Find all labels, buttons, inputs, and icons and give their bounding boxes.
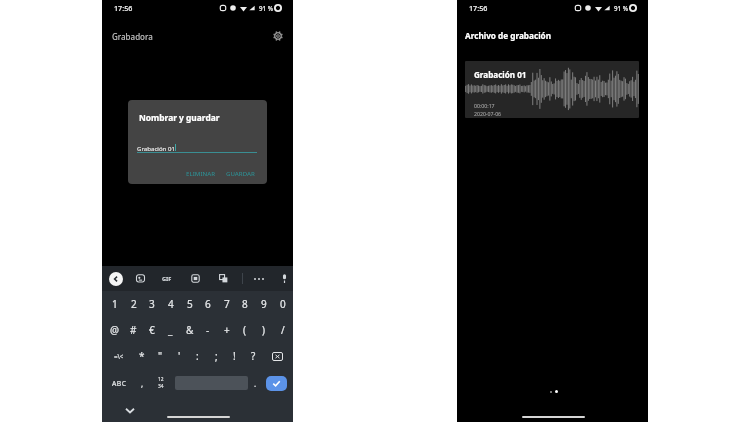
button[interactable]: 1	[105, 291, 124, 317]
button[interactable]: Hide keyboard	[123, 403, 137, 417]
button[interactable]: Clipboard	[189, 272, 202, 285]
button[interactable]: :	[188, 343, 207, 369]
button[interactable]: Stickers	[134, 272, 147, 285]
button[interactable]: /	[273, 317, 292, 343]
staticText: 34	[158, 383, 164, 390]
button[interactable]: ABC	[105, 369, 134, 397]
button[interactable]: More options	[252, 272, 265, 285]
staticText: :	[196, 349, 199, 363]
staticText: ?	[251, 349, 256, 363]
button[interactable]: 5	[180, 291, 199, 317]
staticText: &	[186, 323, 194, 337]
staticText: 0	[280, 297, 286, 311]
staticText: Grabadora	[112, 31, 153, 42]
staticText: 91 %	[614, 4, 628, 12]
staticText: @	[110, 323, 119, 337]
button[interactable]: 6	[198, 291, 217, 317]
staticText: (	[243, 323, 246, 337]
staticText: =\<	[114, 352, 124, 360]
button[interactable]: GIF	[160, 272, 174, 286]
button[interactable]: Enter	[266, 376, 287, 391]
button[interactable]: 2	[124, 291, 143, 317]
staticText: )	[262, 323, 265, 337]
staticText: ;	[215, 349, 218, 363]
button[interactable]: =\<	[109, 343, 128, 369]
staticText: Archivo de grabación	[465, 30, 552, 41]
button[interactable]: #	[124, 317, 143, 343]
button[interactable]: '	[170, 343, 189, 369]
staticText: "	[158, 349, 163, 363]
staticText: 9	[261, 297, 267, 311]
staticText: Grabación 01	[137, 144, 175, 152]
button[interactable]: *	[132, 343, 151, 369]
button[interactable]: Back	[109, 272, 123, 286]
staticText: .	[254, 378, 257, 389]
staticText: GUARDAR	[226, 169, 255, 177]
button[interactable]: &	[180, 317, 199, 343]
button[interactable]: -	[198, 317, 217, 343]
button[interactable]: Translate	[217, 272, 230, 285]
staticText: '	[178, 349, 181, 363]
button[interactable]: .	[248, 369, 262, 397]
staticText: ABC	[112, 379, 127, 388]
button[interactable]: ;	[207, 343, 226, 369]
button[interactable]: ,	[135, 369, 149, 397]
staticText: 8	[242, 297, 248, 311]
staticText: +	[224, 323, 230, 337]
button[interactable]: ?	[244, 343, 263, 369]
button[interactable]: Backspace	[268, 343, 287, 369]
staticText: #	[130, 323, 137, 337]
button[interactable]: @	[105, 317, 124, 343]
button[interactable]: GUARDAR	[222, 167, 259, 179]
button[interactable]: 8	[235, 291, 254, 317]
button[interactable]: Voice input	[278, 272, 291, 285]
button[interactable]: _	[161, 317, 180, 343]
staticText: 12	[158, 376, 164, 383]
staticText: GIF	[162, 275, 172, 283]
staticText: ELIMINAR	[186, 169, 216, 177]
staticText: 17:56	[114, 3, 133, 13]
staticText: 1	[112, 297, 118, 311]
staticText: ,	[141, 378, 144, 389]
button[interactable]: +	[217, 317, 236, 343]
staticText: Nombrar y guardar	[139, 112, 220, 123]
staticText: 91 %	[259, 4, 273, 12]
staticText: _	[168, 323, 173, 337]
staticText: 17:56	[469, 3, 488, 13]
button[interactable]: Settings	[271, 29, 285, 43]
staticText: 00:00:17	[474, 102, 495, 109]
button[interactable]: 7	[217, 291, 236, 317]
button[interactable]: "	[151, 343, 170, 369]
staticText: -	[206, 323, 210, 337]
button[interactable]: 3	[142, 291, 161, 317]
staticText: €	[149, 323, 155, 337]
button[interactable]: 9	[254, 291, 273, 317]
staticText: *	[139, 349, 145, 363]
button[interactable]: Grabación 01	[465, 61, 639, 118]
button[interactable]: (	[235, 317, 254, 343]
staticText: 3	[149, 297, 155, 311]
staticText: 7	[224, 297, 230, 311]
button[interactable]: ELIMINAR	[182, 167, 220, 179]
staticText: 2020-07-06	[474, 110, 502, 117]
button[interactable]: )	[254, 317, 273, 343]
staticText: /	[281, 323, 285, 337]
staticText: 4	[168, 297, 174, 311]
button[interactable]: 4	[161, 291, 180, 317]
button[interactable]: €	[142, 317, 161, 343]
staticText: Grabación 01	[474, 69, 527, 80]
button[interactable]: !	[225, 343, 244, 369]
button[interactable]: 12	[153, 369, 168, 397]
staticText: 6	[205, 297, 211, 311]
staticText: 5	[187, 297, 193, 311]
button[interactable]: 0	[273, 291, 292, 317]
staticText: 2	[131, 297, 137, 311]
staticText: !	[233, 349, 236, 363]
